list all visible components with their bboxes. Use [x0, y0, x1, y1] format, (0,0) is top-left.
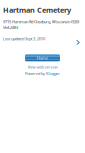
staticText: Blogger. — [46, 71, 60, 76]
staticText: View web version — [27, 64, 57, 70]
staticText: Hartman Cemetery — [3, 5, 71, 15]
button[interactable]: Home — [25, 54, 60, 61]
button[interactable]: Blogger. — [46, 71, 60, 76]
staticText: Powered by — [25, 71, 46, 76]
staticText: 9715 Hartman Rd Oostburg, Wisconsin (920… — [3, 19, 79, 24]
staticText: 564-2483 — [3, 24, 18, 30]
button[interactable]: View web version — [27, 64, 57, 70]
staticText: Last updated Sept 3, 2010 — [3, 36, 45, 41]
staticText: Home — [37, 55, 48, 60]
